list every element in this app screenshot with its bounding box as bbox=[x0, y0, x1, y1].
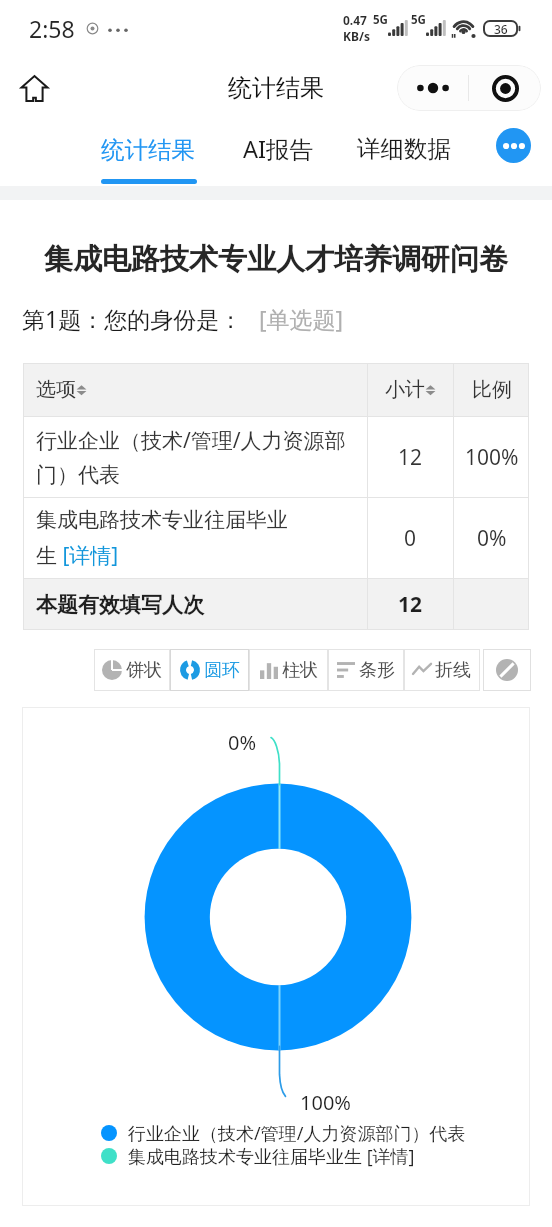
button[interactable]: No chart bbox=[483, 649, 531, 691]
staticText: 统计结果 bbox=[228, 73, 324, 103]
staticText: 折线 bbox=[435, 659, 471, 682]
staticText: 选项 bbox=[36, 377, 76, 402]
staticText: 行业企业（技术/管理/人力资源部门）代表 bbox=[128, 1121, 466, 1144]
staticText: 详细数据 bbox=[357, 134, 451, 164]
staticText: 5G bbox=[411, 12, 426, 28]
staticText: 条形 bbox=[359, 659, 395, 682]
staticText: 饼状 bbox=[126, 659, 162, 682]
staticText: 第1题：您的身份是： bbox=[22, 303, 243, 334]
button[interactable]: 柱状 bbox=[249, 649, 328, 691]
staticText: 100% bbox=[465, 443, 519, 472]
button[interactable]: More options bbox=[496, 128, 531, 163]
staticText: 行业企业（技术/管理/人力资源部门）代表 bbox=[36, 426, 361, 489]
button[interactable]: 条形 bbox=[328, 649, 404, 691]
staticText: 36 bbox=[494, 21, 508, 37]
staticText: 比例 bbox=[472, 377, 512, 402]
staticText: AI报告 bbox=[243, 133, 313, 165]
staticText: 柱状 bbox=[282, 659, 318, 682]
staticText: 2:58 bbox=[29, 13, 75, 44]
staticText: 集成电路技术专业人才培养调研问卷 bbox=[0, 241, 552, 278]
staticText: 集成电路技术专业往届毕业生 [详情] bbox=[128, 1144, 415, 1167]
staticText: 100% bbox=[300, 1089, 351, 1116]
button[interactable]: 折线 bbox=[404, 649, 480, 691]
staticText: 0% bbox=[228, 729, 257, 756]
staticText: 12 bbox=[398, 590, 423, 619]
staticText: [单选题] bbox=[259, 303, 344, 334]
staticText: KB/s bbox=[343, 28, 370, 44]
staticText: 小计 bbox=[385, 377, 425, 402]
staticText: 12 bbox=[398, 443, 423, 472]
staticText: 0% bbox=[477, 524, 507, 553]
button[interactable]: 饼状 bbox=[94, 649, 170, 691]
button[interactable]: Close bbox=[469, 65, 541, 111]
button[interactable]: 详细数据 bbox=[351, 134, 457, 164]
button[interactable]: AI报告 bbox=[237, 133, 319, 165]
staticText: 0 bbox=[404, 524, 417, 553]
button[interactable]: 圆环 bbox=[170, 649, 249, 691]
staticText: 5G bbox=[373, 12, 388, 28]
staticText: 统计结果 bbox=[101, 135, 195, 165]
button[interactable]: 统计结果 bbox=[95, 135, 201, 165]
staticText: 圆环 bbox=[204, 659, 240, 682]
button[interactable]: More bbox=[397, 65, 468, 111]
button[interactable]: Home bbox=[10, 64, 58, 112]
staticText: 本题有效填写人次 bbox=[36, 592, 204, 618]
staticText: 集成电路技术专业往届毕业 生 [详情] bbox=[36, 507, 288, 569]
staticText: 0.47 bbox=[343, 12, 367, 28]
